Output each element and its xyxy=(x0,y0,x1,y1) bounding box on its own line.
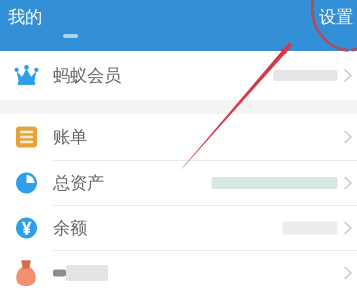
staticText: 蚂蚁会员 xyxy=(53,65,121,86)
button[interactable]: 设置 xyxy=(315,3,357,31)
staticText: 账单 xyxy=(53,126,87,148)
staticText: 我的 xyxy=(8,6,42,28)
staticText: 设置 xyxy=(319,6,353,28)
staticText: 余额 xyxy=(53,217,87,239)
staticText: ¥ xyxy=(21,216,31,239)
button[interactable]: 蚂蚁会员 xyxy=(0,51,357,100)
button[interactable] xyxy=(0,251,357,295)
button[interactable]: 总资产 xyxy=(0,161,357,205)
button[interactable]: 账单 xyxy=(0,114,357,160)
button[interactable]: ¥ xyxy=(0,206,357,250)
staticText: 总资产 xyxy=(53,172,104,194)
